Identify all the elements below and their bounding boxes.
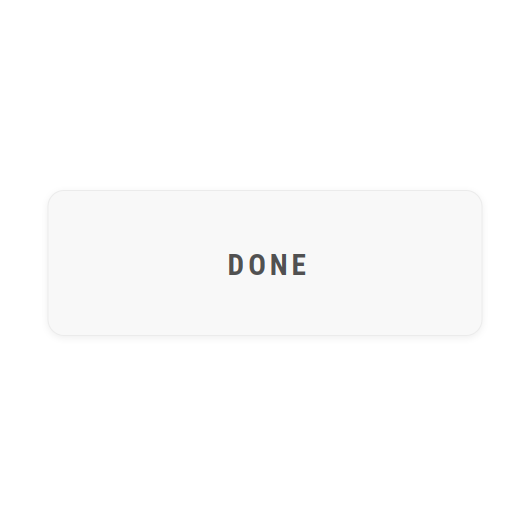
staticText: DONE — [228, 248, 305, 282]
button[interactable]: DONE — [48, 190, 482, 335]
